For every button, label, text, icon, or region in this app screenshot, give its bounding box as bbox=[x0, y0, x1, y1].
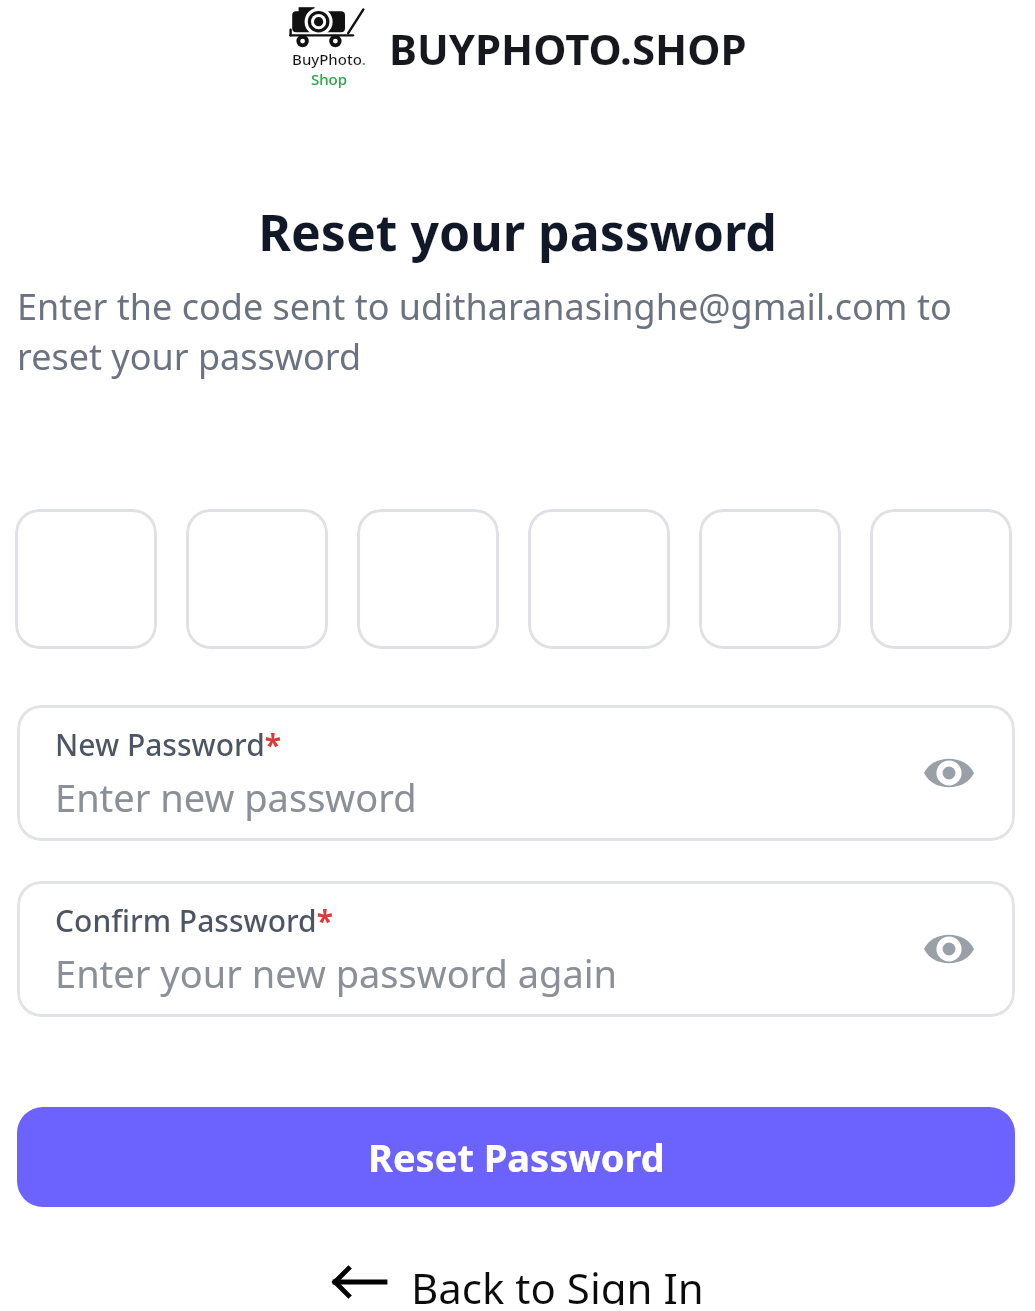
staticText: Reset Password bbox=[368, 1131, 665, 1183]
button[interactable]: Code digit 5 bbox=[699, 509, 841, 649]
button[interactable]: Code digit 6 bbox=[870, 509, 1012, 649]
staticText: BuyPhoto.Shop bbox=[289, 49, 369, 89]
button[interactable]: Back to Sign In bbox=[319, 1253, 716, 1311]
button[interactable]: Confirm Password* bbox=[17, 881, 1015, 1017]
staticText: Confirm Password* bbox=[55, 900, 333, 941]
button[interactable]: Code digit 4 bbox=[528, 509, 670, 649]
button[interactable]: Show confirm password bbox=[913, 913, 985, 985]
staticText: Enter new password bbox=[55, 771, 417, 823]
button[interactable]: Show new password bbox=[913, 737, 985, 809]
staticText: Reset your password bbox=[0, 198, 1035, 266]
button[interactable]: Code digit 2 bbox=[186, 509, 328, 649]
staticText: Enter your new password again bbox=[55, 947, 618, 999]
button[interactable]: Code digit 3 bbox=[357, 509, 499, 649]
button[interactable]: Reset Password bbox=[17, 1107, 1015, 1207]
staticText: New Password* bbox=[55, 724, 282, 765]
staticText: BUYPHOTO.SHOP bbox=[389, 20, 747, 77]
staticText: Enter the code sent to uditharanasinghe@… bbox=[17, 282, 1018, 381]
staticText: Back to Sign In bbox=[411, 1259, 704, 1305]
button[interactable]: New Password* bbox=[17, 705, 1015, 841]
button[interactable]: BuyPhoto.Shop home bbox=[289, 5, 747, 91]
button[interactable]: Code digit 1 bbox=[15, 509, 157, 649]
